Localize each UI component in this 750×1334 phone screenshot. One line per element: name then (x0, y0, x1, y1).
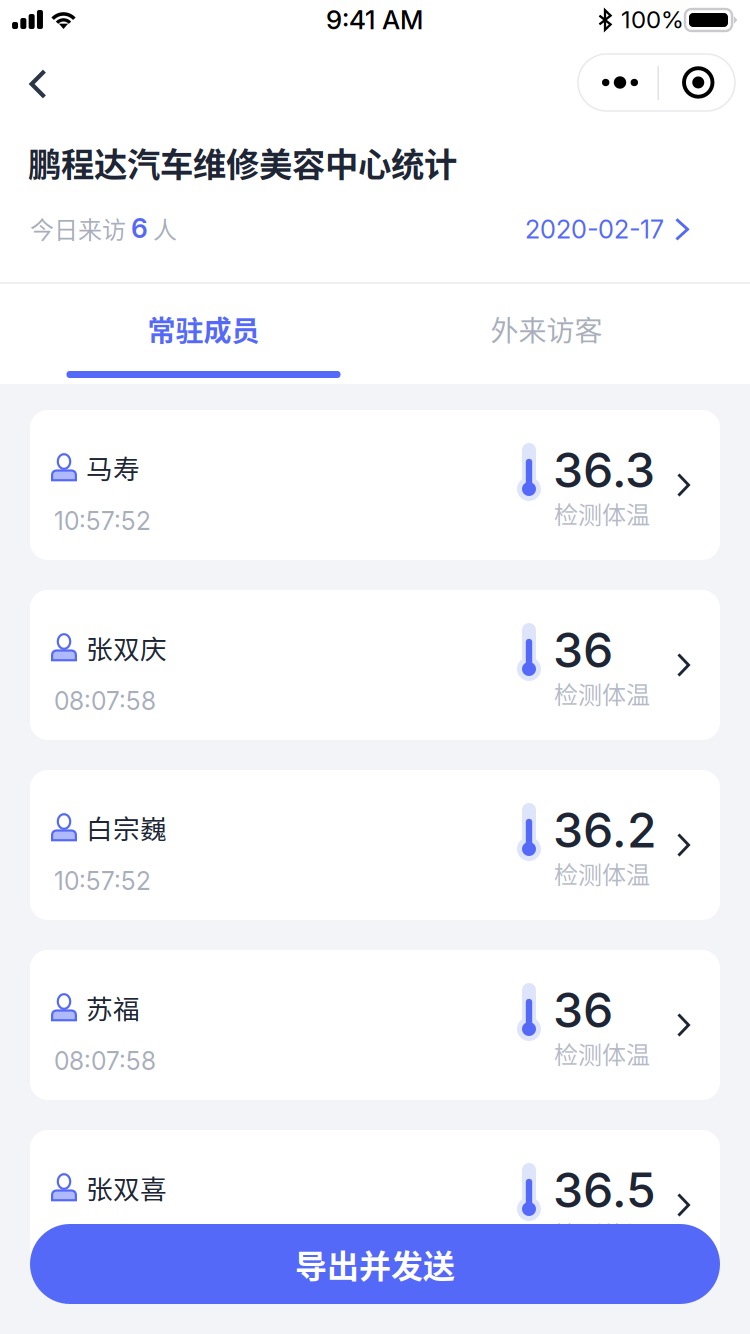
staticText: 36 (553, 981, 613, 1039)
staticText: 张双庆 (86, 628, 167, 667)
staticText: 2020-02-17 (525, 214, 664, 245)
staticText: 检测体温 (554, 676, 650, 711)
staticText: 10:57:52 (54, 506, 151, 536)
button[interactable]: 导出并发送 (30, 1224, 720, 1304)
staticText: 检测体温 (554, 496, 650, 531)
staticText: 08:07:58 (54, 686, 156, 716)
button[interactable]: More options (578, 54, 735, 111)
button[interactable]: 张双庆 (30, 590, 720, 740)
staticText: 36.3 (553, 441, 655, 499)
staticText: 张双喜 (86, 1168, 167, 1207)
button[interactable]: 马寿 (30, 410, 720, 560)
staticText: 导出并发送 (295, 1241, 455, 1287)
staticText: 今日来访 (30, 211, 131, 246)
staticText: 08:07:58 (54, 1046, 156, 1076)
staticText: 白宗巍 (86, 808, 167, 847)
staticText: 常驻成员 (147, 309, 259, 349)
staticText: 36.5 (553, 1161, 656, 1219)
button[interactable]: 苏福 (30, 950, 720, 1100)
button[interactable]: 2020-02-17 (521, 208, 693, 251)
staticText: 苏福 (86, 988, 140, 1027)
staticText: 检测体温 (554, 856, 650, 891)
staticText: 检测体温 (554, 1036, 650, 1071)
staticText: 9:41 AM (326, 4, 423, 35)
staticText: 36 (553, 621, 613, 679)
button[interactable]: 外来访客 (375, 284, 718, 384)
button[interactable]: Back (12, 58, 64, 110)
staticText: 10:57:52 (54, 866, 151, 896)
staticText: 外来访客 (490, 309, 602, 349)
staticText: 36.2 (553, 801, 657, 859)
staticText: 鹏程达汽车维修美容中心统计 (28, 138, 457, 186)
button[interactable]: 常驻成员 (32, 284, 375, 384)
button[interactable]: 张双喜 (30, 1130, 720, 1280)
button[interactable]: 白宗巍 (30, 770, 720, 920)
staticText: 检测体温 (554, 1216, 650, 1251)
staticText: 08:07:58 (54, 1226, 156, 1256)
staticText: 人 (148, 211, 177, 246)
staticText: 100% (621, 5, 684, 34)
staticText: 马寿 (86, 448, 140, 487)
staticText: 6 (131, 212, 148, 244)
